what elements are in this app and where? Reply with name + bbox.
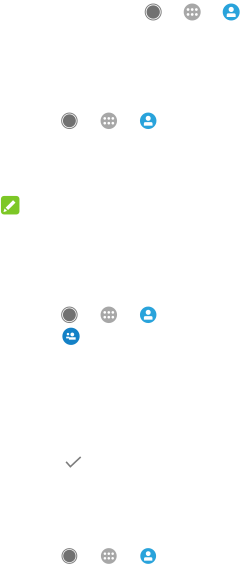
button[interactable]: All apps bbox=[184, 3, 201, 20]
button[interactable]: Shared with people bbox=[62, 328, 80, 345]
button[interactable]: Account bbox=[140, 112, 156, 129]
button[interactable]: Profile bbox=[61, 307, 78, 323]
button[interactable]: All apps bbox=[100, 307, 117, 323]
button[interactable]: All apps bbox=[101, 548, 117, 564]
button[interactable]: Profile bbox=[61, 112, 78, 129]
button[interactable]: Compose bbox=[1, 196, 19, 214]
button[interactable]: Account bbox=[140, 548, 156, 564]
button[interactable]: Account bbox=[140, 307, 156, 323]
button[interactable]: Account bbox=[223, 3, 240, 20]
button[interactable]: Profile bbox=[145, 3, 162, 20]
button[interactable]: Profile bbox=[61, 548, 77, 564]
button[interactable]: All apps bbox=[100, 112, 117, 129]
